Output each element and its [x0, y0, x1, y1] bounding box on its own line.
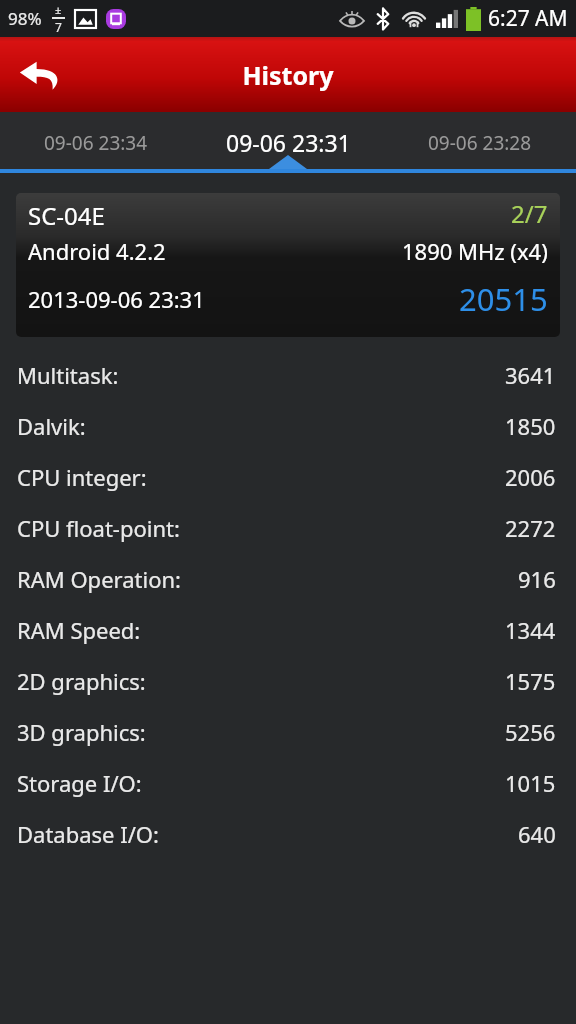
staticText: 3D graphics:	[17, 717, 146, 747]
staticText: 2006	[505, 462, 556, 492]
staticText: 6:27 AM	[488, 4, 568, 33]
staticText: 98%	[8, 7, 42, 30]
button[interactable]: CPU float-point:	[0, 502, 576, 553]
staticText: 2D graphics:	[17, 666, 146, 696]
staticText: 2272	[505, 513, 556, 543]
staticText: 09-06 23:34	[44, 130, 148, 156]
staticText: 09-06 23:31	[226, 127, 351, 158]
button[interactable]: CPU integer:	[0, 451, 576, 502]
staticText: Storage I/O:	[17, 768, 142, 798]
staticText: 1344	[505, 615, 556, 645]
button[interactable]: 09-06 23:34	[0, 112, 192, 173]
staticText: 1890 MHz (x4)	[402, 236, 548, 266]
staticText: Dalvik:	[17, 411, 86, 441]
staticText: 1850	[505, 411, 556, 441]
staticText: 916	[518, 564, 556, 594]
staticText: 1015	[505, 768, 556, 798]
staticText: 2013-09-06 23:31	[28, 284, 205, 314]
button[interactable]: RAM Speed:	[0, 604, 576, 655]
staticText: 5256	[505, 717, 556, 747]
staticText: Database I/O:	[17, 819, 159, 849]
button[interactable]: Dalvik:	[0, 400, 576, 451]
staticText: RAM Speed:	[17, 615, 141, 645]
staticText: CPU integer:	[17, 462, 147, 492]
button[interactable]: Database I/O:	[0, 808, 576, 859]
staticText: 1575	[505, 666, 556, 696]
staticText: 09-06 23:28	[428, 130, 532, 156]
staticText: Multitask:	[17, 360, 119, 390]
staticText: SC-04E	[28, 199, 105, 232]
button[interactable]: 09-06 23:28	[384, 112, 576, 173]
button[interactable]: 2D graphics:	[0, 655, 576, 706]
button[interactable]: SC-04E	[16, 193, 560, 337]
staticText: History	[242, 58, 334, 92]
button[interactable]: Back	[8, 46, 72, 104]
staticText: 7	[55, 19, 62, 35]
button[interactable]: RAM Operation:	[0, 553, 576, 604]
staticText: RAM Operation:	[17, 564, 181, 594]
staticText: 3641	[505, 360, 556, 390]
button[interactable]: 09-06 23:31	[192, 112, 384, 173]
button[interactable]: Multitask:	[0, 349, 576, 400]
staticText: 640	[518, 819, 556, 849]
staticText: CPU float-point:	[17, 513, 180, 543]
button[interactable]: 3D graphics:	[0, 706, 576, 757]
staticText: 20515	[459, 278, 548, 320]
staticText: ±	[55, 2, 62, 17]
staticText: 2/7	[511, 197, 548, 230]
button[interactable]: Storage I/O:	[0, 757, 576, 808]
staticText: Android 4.2.2	[28, 236, 166, 266]
